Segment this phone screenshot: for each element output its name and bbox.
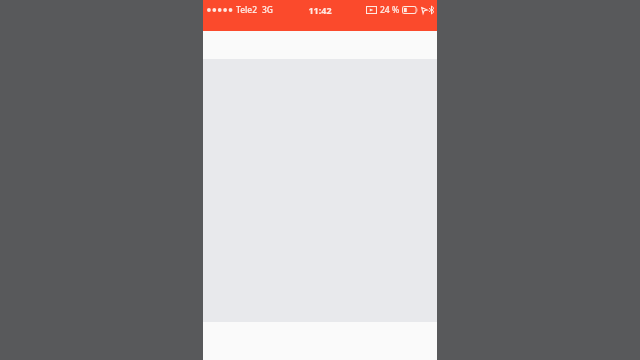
staticText: 24 % bbox=[380, 4, 400, 16]
other: Location services bbox=[421, 6, 428, 14]
button[interactable]: Tele2 bbox=[206, 4, 274, 16]
other: Bluetooth bbox=[429, 6, 434, 14]
staticText: 3G bbox=[262, 4, 274, 16]
button[interactable]: Screen mirroring bbox=[366, 4, 434, 16]
staticText: Tele2 bbox=[236, 4, 258, 16]
other: Screen mirroring bbox=[366, 6, 377, 14]
other: Battery 24 percent bbox=[402, 6, 419, 14]
staticText: 11:42 bbox=[308, 4, 332, 16]
